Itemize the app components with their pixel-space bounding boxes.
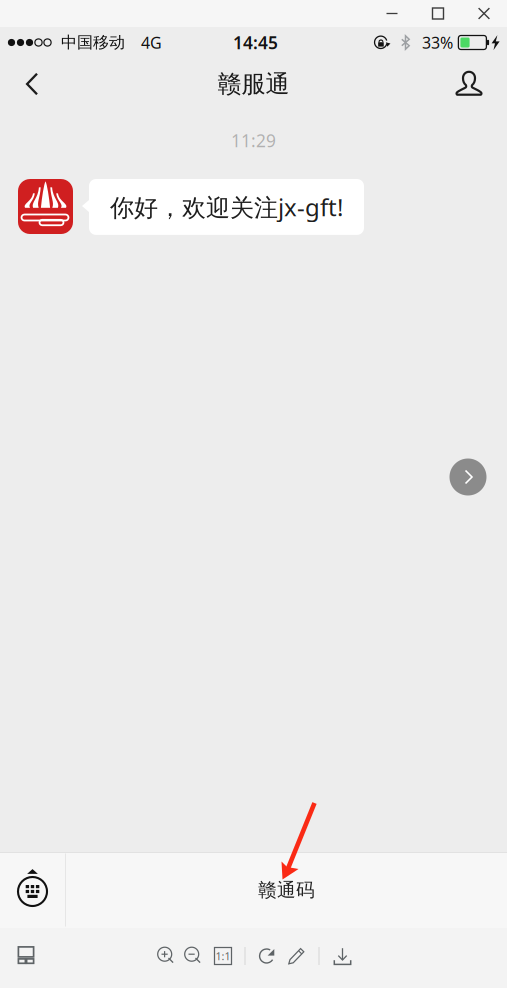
button[interactable]: Rotate bbox=[255, 943, 281, 969]
button[interactable]: Maximize bbox=[415, 0, 461, 27]
button[interactable]: Next bbox=[446, 455, 490, 499]
button[interactable]: Thumbnails bbox=[10, 940, 42, 972]
button[interactable]: Back bbox=[6, 58, 58, 110]
button[interactable]: Keyboard bbox=[0, 852, 65, 927]
staticText: 33% bbox=[422, 32, 453, 53]
staticText: 11:29 bbox=[231, 129, 276, 152]
button[interactable]: 赣通码 bbox=[66, 852, 507, 927]
staticText: 4G bbox=[141, 32, 162, 53]
staticText: 你好，欢迎关注jx-gft! bbox=[110, 191, 343, 223]
staticText: 赣通码 bbox=[258, 878, 315, 901]
staticText: 赣服通 bbox=[217, 69, 289, 99]
staticText: 14:45 bbox=[233, 31, 278, 54]
button[interactable]: Edit bbox=[284, 943, 310, 969]
button[interactable]: Download bbox=[329, 943, 355, 969]
staticText: 1:1 bbox=[215, 949, 230, 963]
button[interactable]: Contact info bbox=[443, 58, 495, 110]
button[interactable]: Minimize bbox=[369, 0, 415, 27]
staticText: 中国移动 bbox=[61, 33, 125, 52]
button[interactable]: Zoom in bbox=[153, 943, 179, 969]
button[interactable]: Zoom out bbox=[180, 943, 206, 969]
button[interactable]: Close bbox=[461, 0, 507, 27]
button[interactable]: Actual size bbox=[210, 943, 236, 969]
